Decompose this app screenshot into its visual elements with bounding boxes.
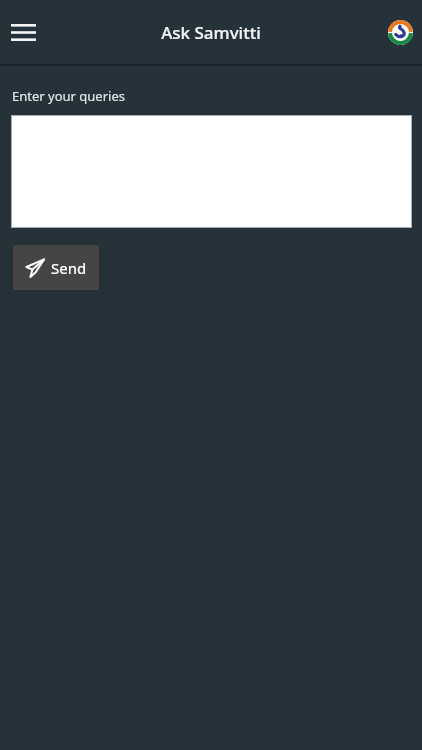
button[interactable] [11,115,412,228]
staticText: Ask Samvitti [161,21,261,44]
staticText: Enter your queries [12,87,125,105]
staticText: Send [51,258,87,278]
button[interactable]: Samvitti logo [382,14,418,50]
button[interactable]: Send [12,244,100,291]
button[interactable]: Open navigation menu [1,10,45,54]
